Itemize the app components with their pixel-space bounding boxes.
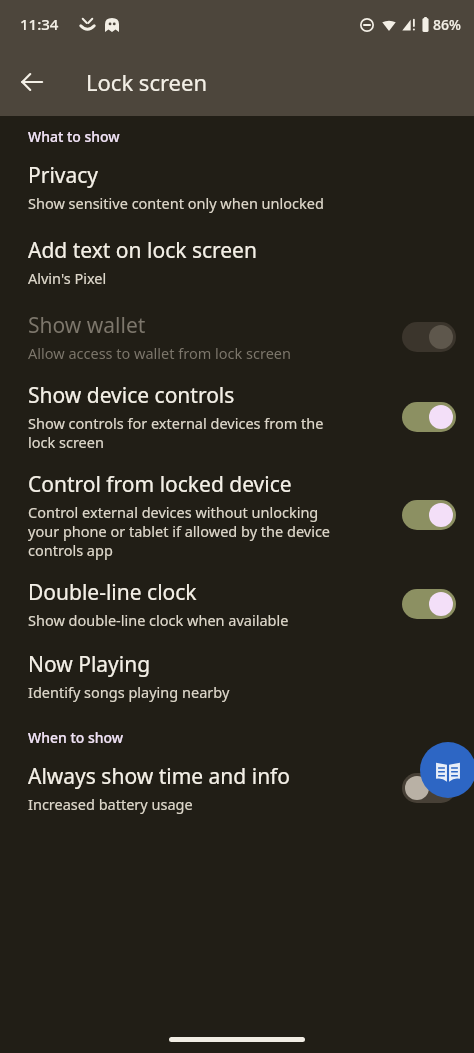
staticText: Now Playing <box>28 650 151 679</box>
staticText: Show wallet <box>28 311 146 340</box>
button[interactable]: Toggle <box>402 500 456 530</box>
button[interactable]: Now Playing <box>0 648 474 704</box>
staticText: Alvin's Pixel <box>28 268 107 288</box>
staticText: 11:34 <box>20 14 59 34</box>
staticText: Allow access to wallet from lock screen <box>28 343 291 363</box>
button[interactable]: Toggle <box>402 322 456 352</box>
staticText: Lock screen <box>86 67 208 97</box>
staticText: When to show <box>28 728 124 747</box>
staticText: Show controls for external devices from … <box>28 413 324 452</box>
button[interactable]: Always show time and info <box>0 760 474 816</box>
button[interactable]: Toggle <box>402 402 456 432</box>
staticText: Control external devices without unlocki… <box>28 502 331 560</box>
button[interactable]: Double-line clock <box>0 576 474 632</box>
staticText: Increased battery usage <box>28 794 193 814</box>
button[interactable]: Toggle <box>402 773 456 803</box>
button[interactable]: Privacy <box>0 159 474 215</box>
staticText: What to show <box>28 127 120 146</box>
button[interactable]: Add text on lock screen <box>0 234 474 290</box>
button[interactable]: Back <box>8 58 56 106</box>
staticText: Privacy <box>28 161 99 190</box>
staticText: Add text on lock screen <box>28 236 257 265</box>
button[interactable]: Toggle <box>402 589 456 619</box>
staticText: Show double-line clock when available <box>28 610 289 630</box>
staticText: Identify songs playing nearby <box>28 682 230 702</box>
button[interactable]: Control from locked device <box>0 468 474 562</box>
button[interactable]: Chat bubble <box>420 742 474 798</box>
staticText: Always show time and info <box>28 762 291 791</box>
button[interactable]: Show wallet <box>0 309 474 365</box>
staticText: Show device controls <box>28 381 235 410</box>
staticText: Show sensitive content only when unlocke… <box>28 193 324 213</box>
staticText: 86% <box>433 15 461 34</box>
button[interactable]: Show device controls <box>0 379 474 454</box>
staticText: Double-line clock <box>28 578 197 607</box>
staticText: Control from locked device <box>28 470 292 499</box>
